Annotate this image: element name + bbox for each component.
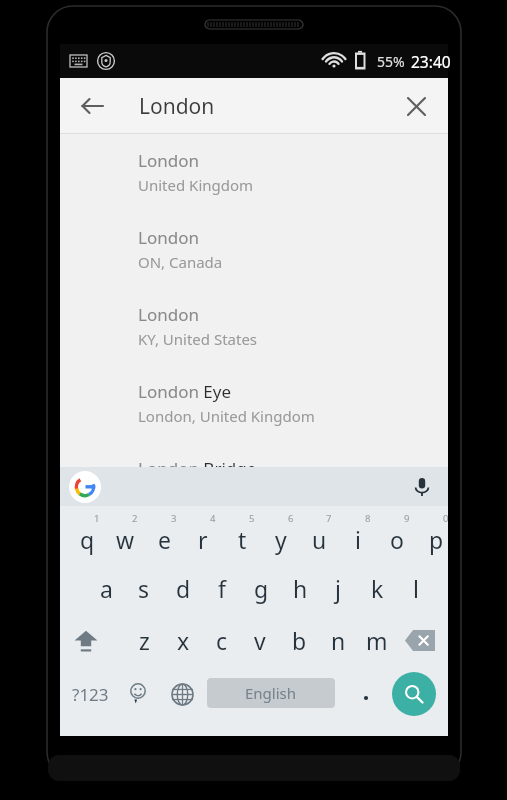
button[interactable]: 6 xyxy=(262,510,300,562)
staticText: 9 xyxy=(404,512,410,525)
button[interactable]: 2 xyxy=(106,510,144,562)
staticText: z xyxy=(139,625,150,656)
button[interactable]: Google search xyxy=(69,471,101,503)
button[interactable]: 5 xyxy=(223,510,261,562)
button[interactable]: c xyxy=(203,614,241,666)
staticText: o xyxy=(390,524,404,555)
staticText: 5 xyxy=(249,512,255,525)
button[interactable]: Change language xyxy=(160,666,204,722)
button[interactable]: London xyxy=(60,217,448,294)
button[interactable]: a xyxy=(87,562,125,614)
button[interactable]: Backspace xyxy=(396,614,444,666)
staticText: j xyxy=(335,573,341,604)
staticText: v xyxy=(254,625,266,656)
staticText: q xyxy=(80,524,95,555)
button[interactable]: j xyxy=(319,562,357,614)
staticText: ON, Canada xyxy=(138,252,223,272)
staticText: x xyxy=(177,625,190,656)
staticText: ?123 xyxy=(72,683,109,706)
staticText: 6 xyxy=(288,512,294,525)
staticText: London, United Kingdom xyxy=(138,406,315,426)
staticText: g xyxy=(254,573,269,604)
staticText: 8 xyxy=(365,512,371,525)
staticText: KY, United States xyxy=(138,329,258,349)
button[interactable] xyxy=(346,666,386,722)
staticText: h xyxy=(293,573,308,604)
staticText: y xyxy=(275,524,287,555)
button[interactable]: x xyxy=(164,614,202,666)
staticText: e xyxy=(158,524,171,555)
button[interactable]: London Eye xyxy=(60,371,448,448)
button[interactable]: Back xyxy=(70,84,114,128)
button[interactable]: English xyxy=(207,678,335,708)
staticText: k xyxy=(371,573,384,604)
staticText: c xyxy=(216,625,228,656)
button[interactable]: m xyxy=(358,614,396,666)
button[interactable]: g xyxy=(242,562,280,614)
staticText: United Kingdom xyxy=(138,175,254,195)
staticText: n xyxy=(331,625,346,656)
staticText: 4 xyxy=(210,512,216,525)
staticText: s xyxy=(138,573,150,604)
button[interactable]: d xyxy=(164,562,202,614)
staticText: 23:40 xyxy=(411,51,451,72)
staticText: 1 xyxy=(94,512,100,525)
staticText: 3 xyxy=(171,512,177,525)
staticText: t xyxy=(238,524,247,555)
button[interactable]: l xyxy=(397,562,435,614)
button[interactable]: Clear xyxy=(394,84,438,128)
staticText: London xyxy=(138,149,199,172)
staticText: m xyxy=(366,625,388,656)
button[interactable]: London xyxy=(60,140,448,217)
staticText: English xyxy=(245,683,297,703)
staticText: London xyxy=(138,303,199,326)
button[interactable]: f xyxy=(203,562,241,614)
staticText: w xyxy=(116,524,135,555)
staticText: 2 xyxy=(132,512,138,525)
button[interactable]: 0 xyxy=(417,510,455,562)
staticText: London Eye xyxy=(138,380,232,403)
staticText: f xyxy=(218,573,226,604)
button[interactable]: Emoji xyxy=(116,666,160,722)
button[interactable]: 9 xyxy=(378,510,416,562)
button[interactable]: 1 xyxy=(68,510,106,562)
staticText: p xyxy=(429,524,444,555)
staticText: 55% xyxy=(377,52,405,71)
button[interactable]: 4 xyxy=(184,510,222,562)
button[interactable]: Search xyxy=(392,672,436,716)
button[interactable]: k xyxy=(358,562,396,614)
staticText: b xyxy=(292,625,307,656)
button[interactable]: z xyxy=(125,614,163,666)
staticText: London xyxy=(138,226,199,249)
staticText: d xyxy=(176,573,191,604)
button[interactable]: 3 xyxy=(145,510,183,562)
button[interactable]: n xyxy=(319,614,357,666)
button[interactable]: Shift xyxy=(62,614,110,666)
staticText: a xyxy=(100,573,113,604)
staticText: i xyxy=(355,524,361,555)
button[interactable]: h xyxy=(281,562,319,614)
staticText: 7 xyxy=(326,512,332,525)
button[interactable]: s xyxy=(125,562,163,614)
staticText: 0 xyxy=(443,512,449,525)
button[interactable]: Voice input xyxy=(404,469,440,505)
staticText: r xyxy=(198,524,208,555)
staticText: London xyxy=(139,92,215,121)
button[interactable]: v xyxy=(241,614,279,666)
button[interactable]: ?123 xyxy=(64,666,116,722)
button[interactable]: b xyxy=(280,614,318,666)
staticText: u xyxy=(312,524,327,555)
button[interactable]: 8 xyxy=(339,510,377,562)
staticText: l xyxy=(413,573,419,604)
staticText: London Bridge xyxy=(138,457,257,473)
button[interactable]: London xyxy=(60,294,448,371)
button[interactable]: 7 xyxy=(300,510,338,562)
button[interactable]: London Bridge xyxy=(60,448,448,473)
